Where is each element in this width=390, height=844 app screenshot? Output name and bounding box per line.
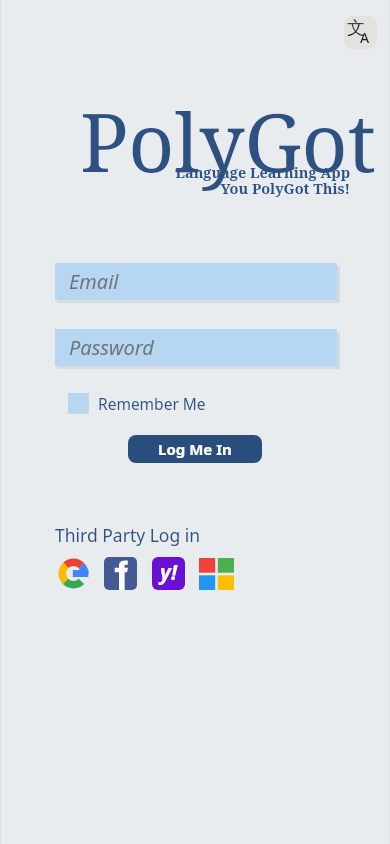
button[interactable]: Sign in with Microsoft bbox=[199, 558, 234, 590]
button[interactable]: Email bbox=[55, 263, 337, 300]
staticText: Third Party Log in bbox=[55, 523, 201, 547]
staticText: y! bbox=[160, 558, 177, 587]
button[interactable]: Sign in with Yahoo bbox=[152, 557, 185, 590]
staticText: Remember Me bbox=[98, 393, 206, 414]
staticText: Password bbox=[69, 334, 154, 361]
staticText: Log Me In bbox=[158, 439, 232, 459]
button[interactable]: Remember Me bbox=[66, 391, 208, 416]
button[interactable]: Password bbox=[55, 329, 337, 366]
staticText: A bbox=[360, 28, 370, 47]
staticText: 文 bbox=[347, 17, 365, 40]
button[interactable]: Translate language bbox=[344, 16, 377, 49]
button[interactable]: Sign in with Google bbox=[57, 557, 90, 590]
staticText: PolyGot bbox=[80, 86, 376, 195]
staticText: Email bbox=[69, 268, 119, 295]
button[interactable]: Sign in with Facebook bbox=[104, 557, 137, 590]
staticText: Language Learning App You PolyGot This! bbox=[175, 162, 350, 199]
button[interactable]: Log Me In bbox=[128, 435, 262, 463]
